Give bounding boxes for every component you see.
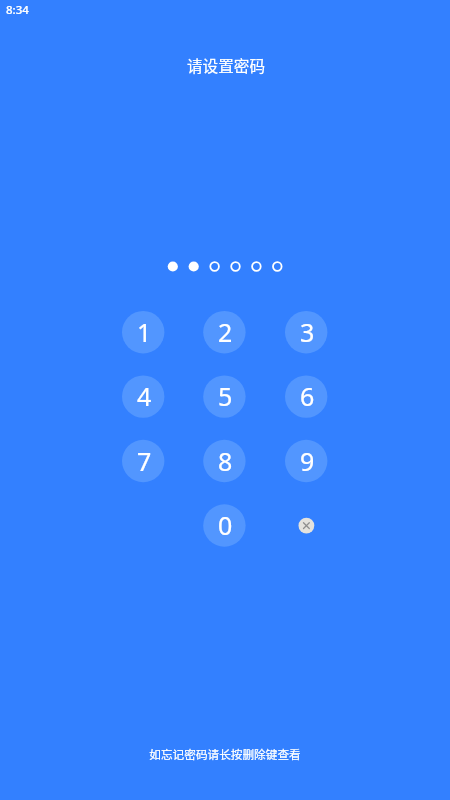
staticText: 4 bbox=[137, 379, 152, 413]
staticText: 1 bbox=[137, 315, 152, 349]
staticText: 2 bbox=[218, 315, 233, 349]
button[interactable]: Delete bbox=[285, 504, 327, 546]
button[interactable]: 6 bbox=[285, 375, 327, 417]
staticText: 0 bbox=[218, 508, 233, 542]
staticText: 5 bbox=[218, 379, 233, 413]
button[interactable]: 3 bbox=[285, 311, 327, 353]
button[interactable]: 0 bbox=[203, 504, 245, 546]
staticText: 8:34 bbox=[6, 2, 29, 18]
button[interactable]: 1 bbox=[122, 311, 164, 353]
staticText: 3 bbox=[300, 315, 315, 349]
button[interactable]: 5 bbox=[203, 375, 245, 417]
button[interactable]: 2 bbox=[203, 311, 245, 353]
button[interactable]: 9 bbox=[285, 440, 327, 482]
staticText: 请设置密码 bbox=[187, 54, 265, 76]
staticText: 如忘记密码请长按删除键查看 bbox=[149, 745, 301, 762]
button[interactable]: 8 bbox=[203, 440, 245, 482]
staticText: 8 bbox=[218, 444, 233, 478]
staticText: 6 bbox=[300, 379, 315, 413]
staticText: 7 bbox=[137, 444, 152, 478]
button[interactable]: 7 bbox=[122, 440, 164, 482]
button[interactable]: 4 bbox=[122, 375, 164, 417]
staticText: 9 bbox=[300, 444, 315, 478]
